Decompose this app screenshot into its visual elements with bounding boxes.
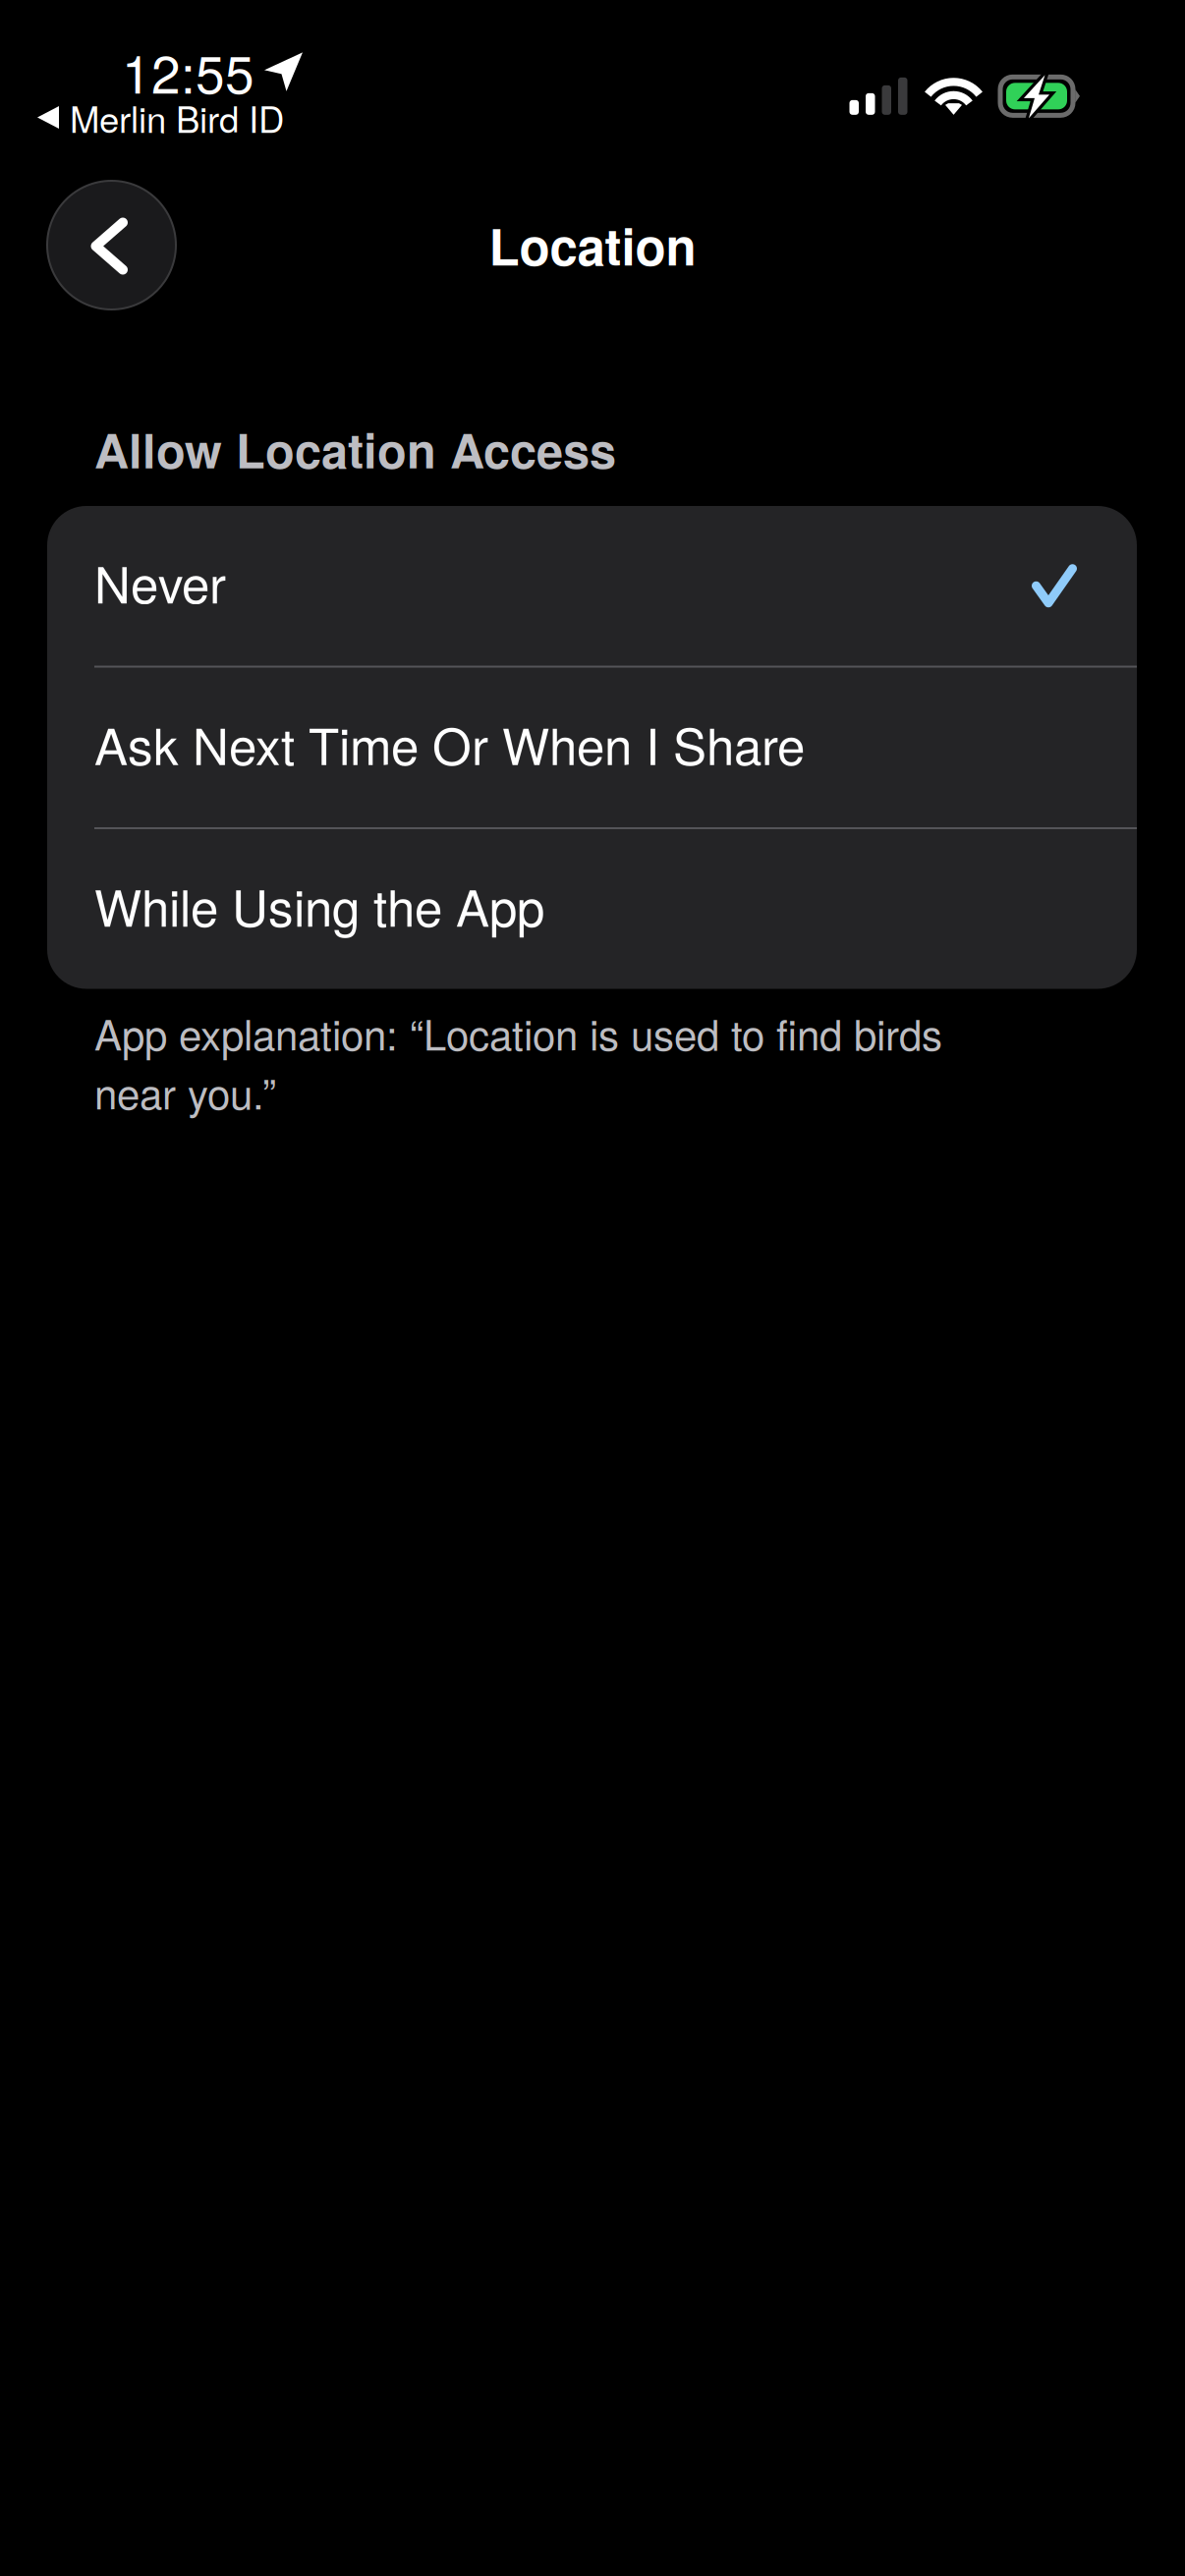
button[interactable]: Back — [47, 181, 176, 309]
staticText: Allow Location Access — [94, 415, 616, 483]
button[interactable]: Ask Next Time Or When I Share — [47, 668, 1137, 827]
staticText: Merlin Bird ID — [70, 92, 284, 143]
staticText: 12:55 — [122, 34, 254, 108]
staticText: App explanation: “Location is used to fi… — [94, 1003, 942, 1121]
staticText: While Using the App — [94, 869, 544, 941]
staticText: Ask Next Time Or When I Share — [94, 708, 805, 779]
button[interactable]: Never — [47, 506, 1137, 666]
staticText: Location — [489, 209, 696, 281]
button[interactable]: While Using the App — [47, 829, 1137, 989]
staticText: Never — [94, 546, 226, 618]
